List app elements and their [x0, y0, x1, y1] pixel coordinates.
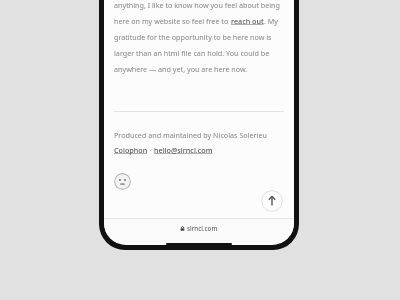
staticText: · — [148, 145, 154, 155]
staticText: . My — [264, 16, 278, 26]
staticText: Colophon — [114, 145, 148, 155]
button[interactable]: Colophon — [114, 145, 148, 155]
staticText: anything, I like to know how you feel ab… — [114, 0, 280, 10]
staticText: here on my website so feel free to — [114, 16, 231, 26]
staticText: larger than an html file can hold. You c… — [114, 48, 270, 58]
staticText: Produced and maintained by Nicolas Soler… — [114, 130, 267, 140]
button[interactable]: Smiley face — [114, 173, 131, 190]
button[interactable]: reach out — [231, 16, 264, 26]
staticText: slrncl.com — [187, 224, 218, 232]
button[interactable]: hello@slrncl.com — [154, 145, 213, 155]
staticText: anywhere — and yet, you are here now. — [114, 64, 248, 74]
staticText: hello@slrncl.com — [154, 145, 213, 155]
staticText: gratitude for the opportunity to be here… — [114, 32, 272, 42]
button[interactable]: Scroll to top — [261, 190, 283, 212]
staticText: reach out — [231, 16, 264, 26]
button[interactable]: slrncl.com — [180, 224, 218, 232]
